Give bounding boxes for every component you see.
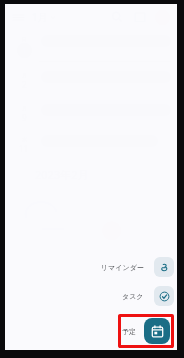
button[interactable]: タスク [119, 284, 174, 308]
other: タスクを追加 [154, 286, 174, 306]
other: リマインダーを追加 [154, 257, 174, 277]
staticText: 予定 [122, 327, 136, 336]
other: 予定を追加 [144, 318, 170, 344]
button[interactable]: リマインダー [98, 255, 174, 279]
staticText: リマインダー [101, 263, 144, 272]
button[interactable]: 予定 [122, 318, 170, 344]
staticText: タスク [122, 292, 144, 301]
